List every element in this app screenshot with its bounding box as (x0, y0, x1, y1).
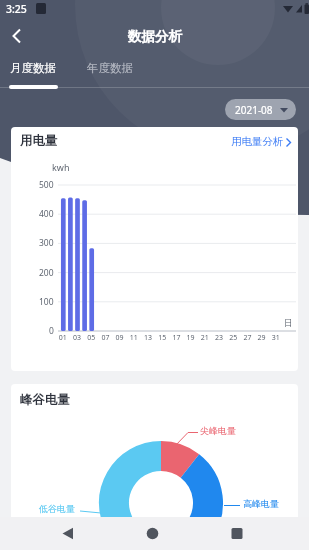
staticText: 用电量 (20, 133, 58, 149)
staticText: 数据分析 (128, 28, 182, 45)
staticText: 年度数据 (87, 61, 133, 75)
button[interactable] (133, 517, 173, 550)
button[interactable]: 用电量分析 (231, 135, 292, 148)
button[interactable]: 月度数据 (0, 56, 70, 86)
button[interactable] (48, 517, 88, 550)
button[interactable] (4, 22, 32, 50)
staticText: 月度数据 (10, 61, 56, 75)
button[interactable]: 年度数据 (76, 56, 146, 86)
staticText: 峰谷电量 (20, 392, 70, 408)
staticText: 用电量分析 (231, 135, 284, 148)
button[interactable] (217, 517, 257, 550)
button[interactable]: 2021-08 (225, 99, 296, 120)
staticText: 2021-08 (235, 103, 273, 117)
staticText: 3:25 (6, 2, 27, 16)
